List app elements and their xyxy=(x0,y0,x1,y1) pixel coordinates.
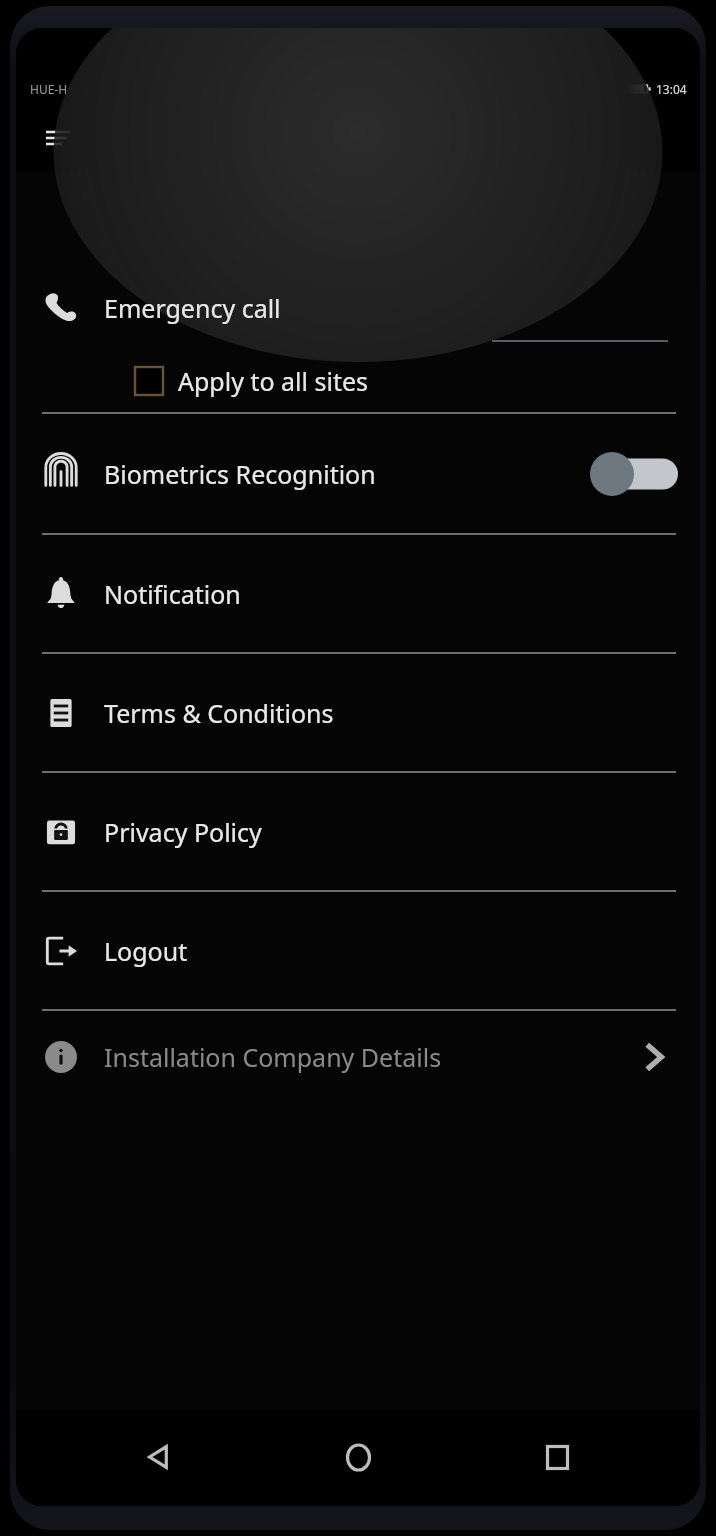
button[interactable]: Toggle biometrics recognition xyxy=(588,449,680,499)
staticText: Installation Company Details xyxy=(104,1040,442,1074)
button[interactable]: Installation Company Details xyxy=(16,1011,700,1103)
button[interactable]: Home xyxy=(329,1428,387,1486)
staticText: HUE-H xyxy=(30,81,68,97)
button[interactable]: Notification xyxy=(16,535,700,652)
button[interactable]: Logout xyxy=(16,892,700,1009)
staticText: Terms & Conditions xyxy=(104,696,334,730)
staticText: Apply to all sites xyxy=(178,364,369,398)
staticText: Biometrics Recognition xyxy=(104,457,376,491)
button[interactable]: Apply to all sites xyxy=(16,353,369,409)
button[interactable]: Back xyxy=(130,1428,188,1486)
staticText: Logout xyxy=(104,934,188,968)
button[interactable]: Terms & Conditions xyxy=(16,654,700,771)
button[interactable]: Emergency call xyxy=(16,267,700,349)
button[interactable]: Privacy Policy xyxy=(16,773,700,890)
button[interactable]: Biometrics Recognition xyxy=(16,414,700,533)
staticText: 13:04 xyxy=(656,81,687,97)
staticText: Notification xyxy=(104,577,241,611)
staticText: Privacy Policy xyxy=(104,815,262,849)
button[interactable]: Recent apps xyxy=(528,1428,586,1486)
staticText: Emergency call xyxy=(104,291,281,325)
button[interactable]: Open navigation menu xyxy=(38,118,78,158)
